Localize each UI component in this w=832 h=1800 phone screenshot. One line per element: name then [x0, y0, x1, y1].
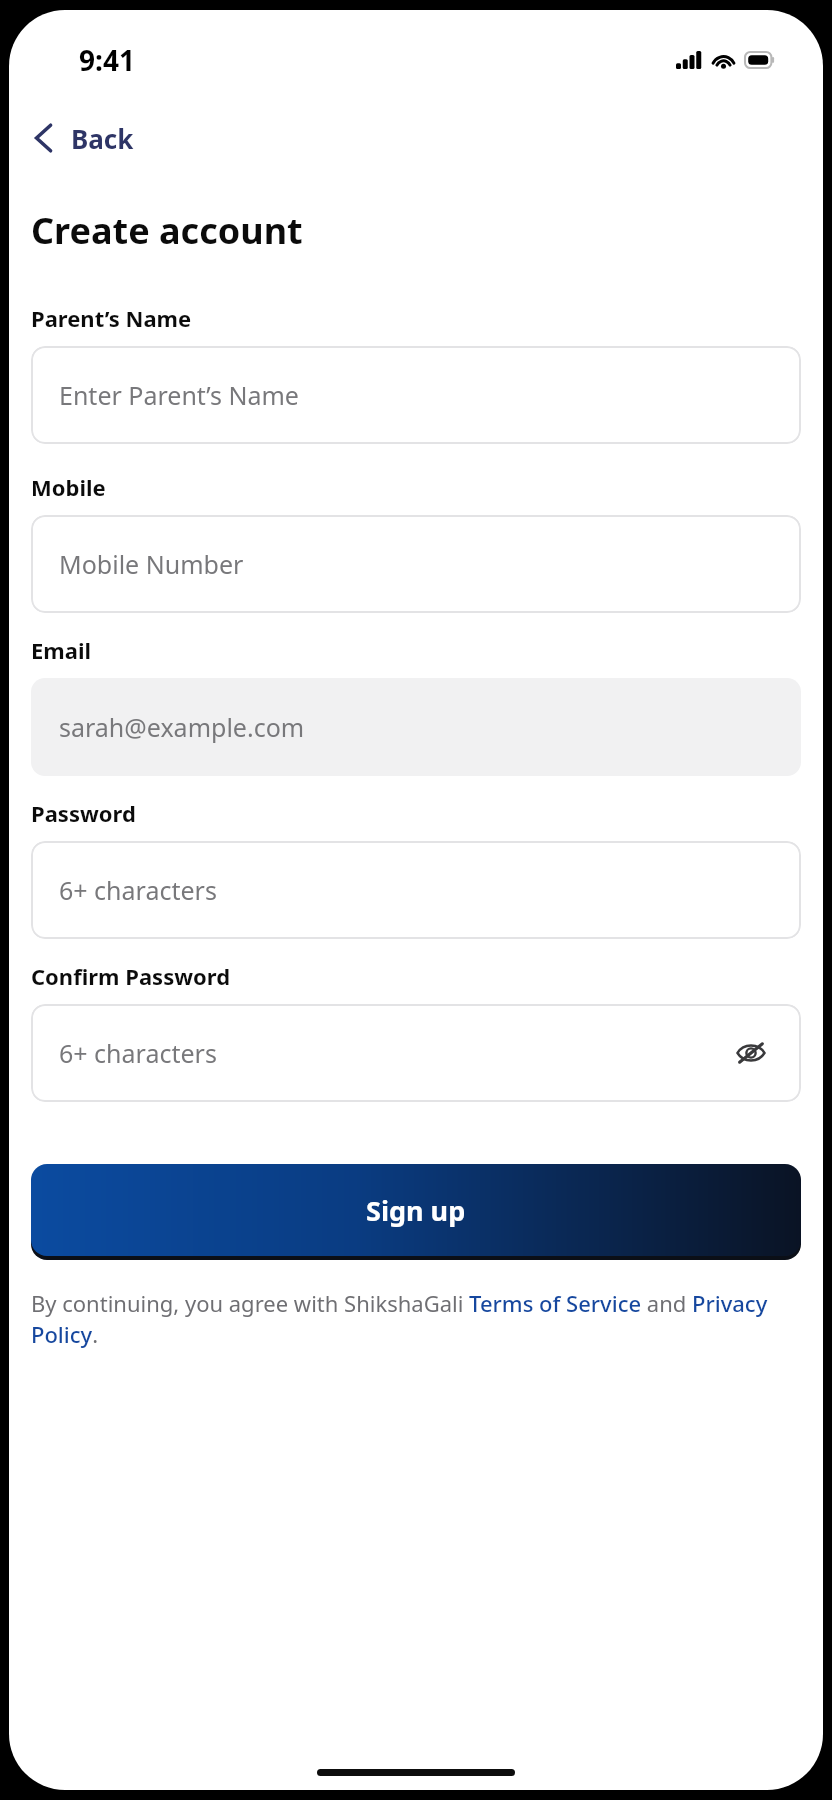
staticText: Confirm Password [31, 961, 231, 991]
staticText: Email [31, 635, 92, 665]
button[interactable]: 6+ characters [31, 1004, 801, 1102]
staticText: Back [71, 121, 134, 156]
staticText: Mobile [31, 472, 106, 502]
staticText: Enter Parent’s Name [59, 378, 299, 412]
button[interactable]: Enter Parent’s Name [31, 346, 801, 444]
staticText: Password [31, 798, 136, 828]
button[interactable]: Back [23, 110, 144, 166]
button[interactable]: Sign up [31, 1164, 801, 1256]
button[interactable]: 6+ characters [31, 841, 801, 939]
staticText: Sign up [366, 1192, 466, 1229]
button[interactable]: Mobile Number [31, 515, 801, 613]
staticText: 6+ characters [59, 1036, 217, 1070]
staticText: 6+ characters [59, 873, 217, 907]
button[interactable]: By continuing, you agree with ShikshaGal… [31, 1288, 801, 1350]
staticText: Parent’s Name [31, 303, 192, 333]
staticText: Mobile Number [59, 547, 244, 581]
button[interactable]: sarah@example.com [31, 678, 801, 776]
staticText: Create account [31, 206, 303, 255]
staticText: 9:41 [79, 41, 135, 79]
staticText: sarah@example.com [59, 710, 305, 744]
button[interactable]: Show password [729, 1031, 773, 1075]
